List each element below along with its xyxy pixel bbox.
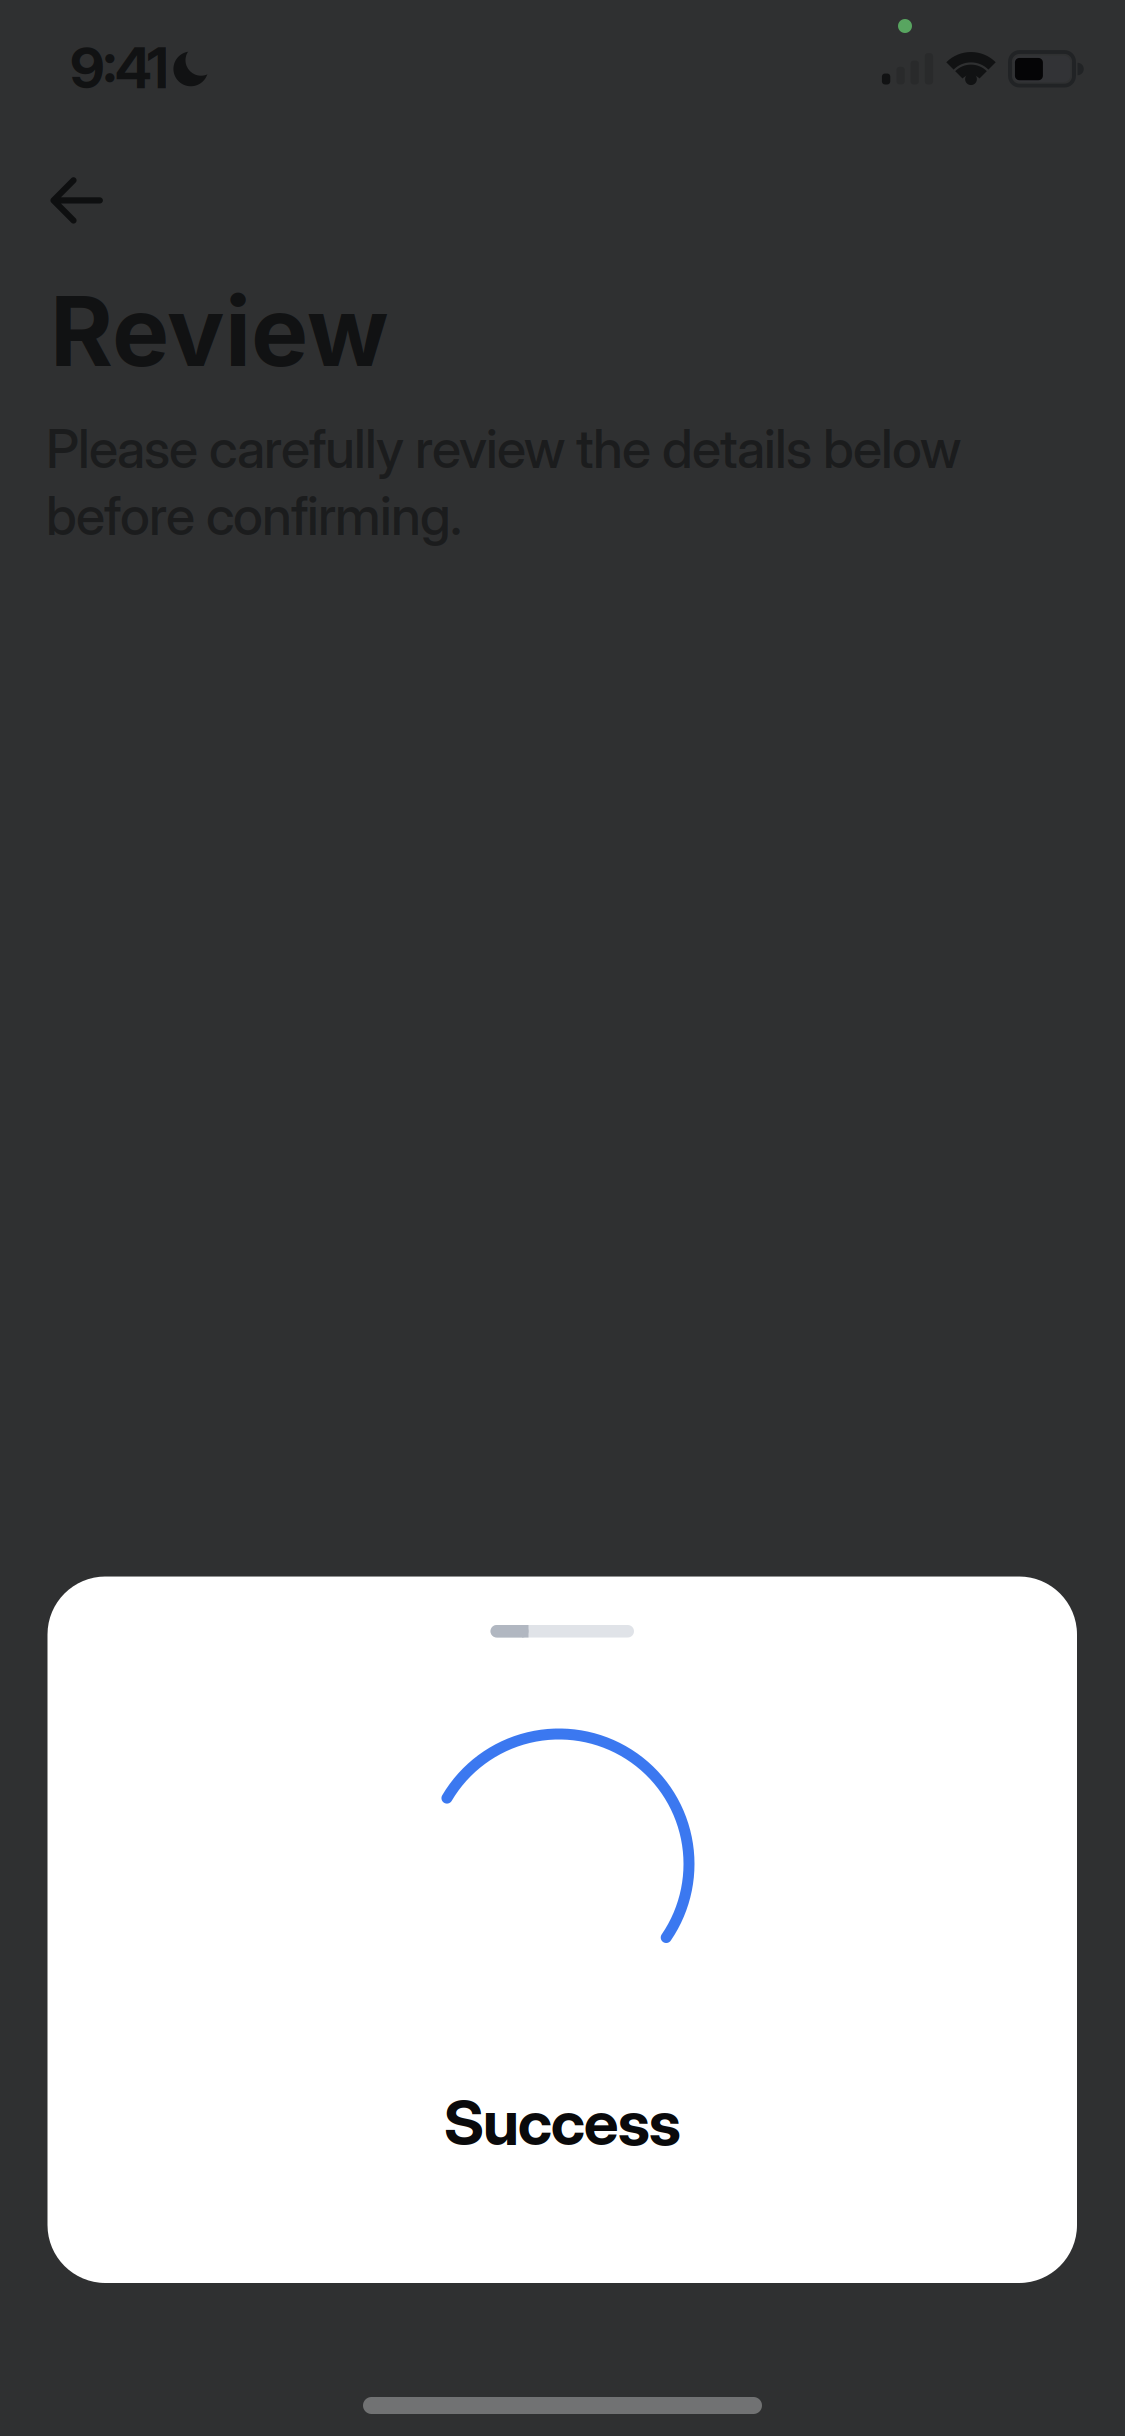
button[interactable]: Back [16,140,136,260]
staticText: Success [444,2085,681,2160]
staticText: Please carefully review the details belo… [46,416,961,548]
staticText: 9:41 [70,34,169,102]
staticText: Review [50,273,389,389]
